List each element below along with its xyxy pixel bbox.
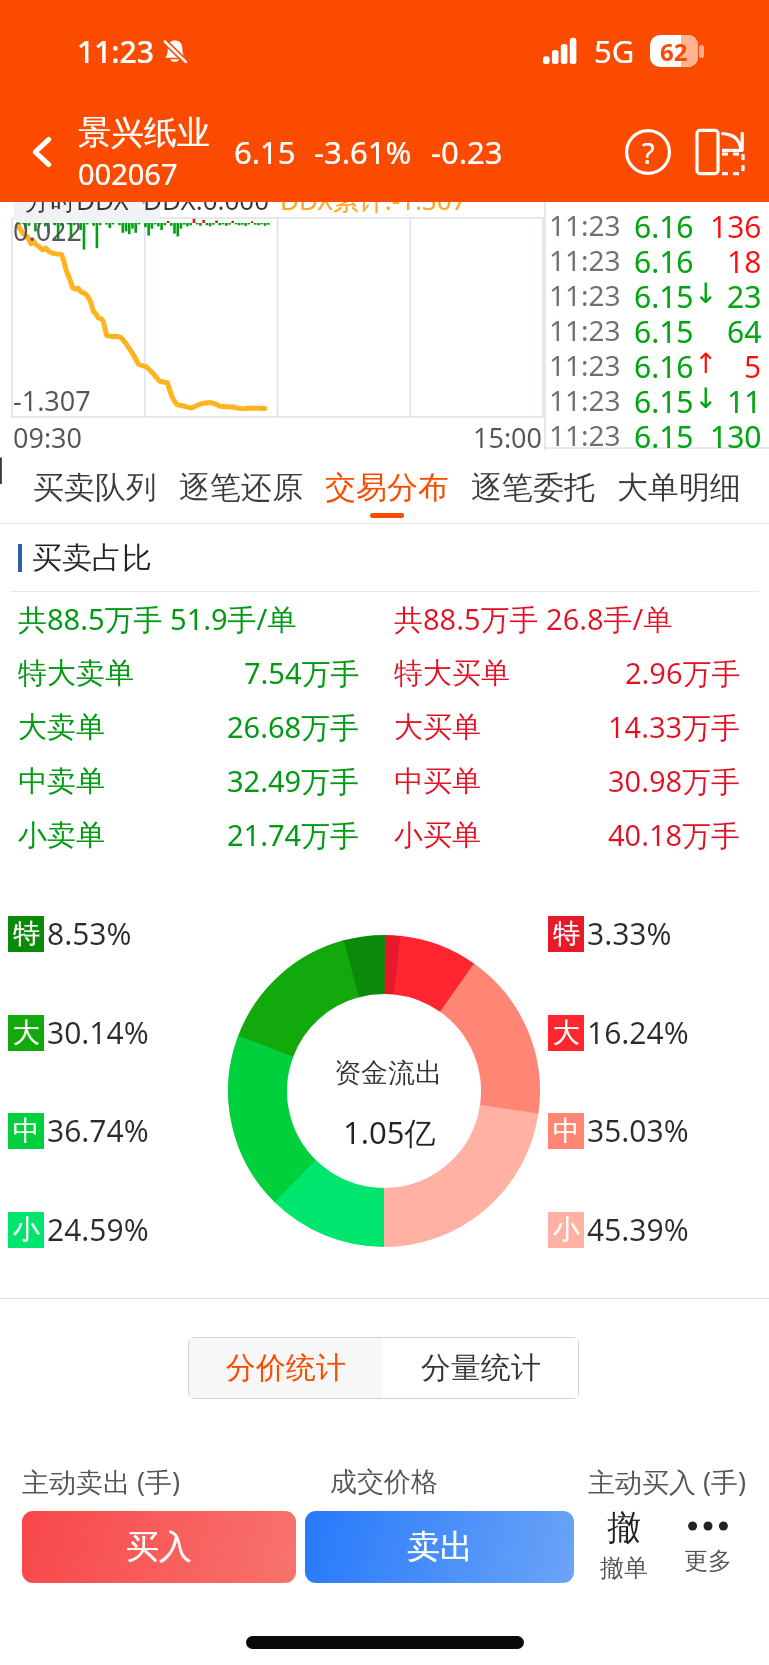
- staticText: 11:23: [549, 241, 621, 276]
- staticText: 大买单: [394, 709, 481, 746]
- staticText: 11:23: [549, 276, 621, 311]
- staticText: 特大买单: [394, 655, 510, 692]
- staticText: 资金流出: [334, 1056, 442, 1090]
- staticText: 6.15: [634, 311, 694, 346]
- button[interactable]: 买卖队列: [33, 450, 157, 524]
- staticText: DDX累计:-1.307: [280, 182, 467, 218]
- staticText: 买入: [126, 1526, 192, 1568]
- staticText: 小卖单: [18, 817, 105, 854]
- staticText: 14.33万手: [608, 707, 741, 747]
- staticText: 3.33%: [587, 913, 672, 954]
- staticText: 30.14%: [47, 1012, 149, 1053]
- staticText: 中卖单: [18, 763, 105, 800]
- staticText: 11: [727, 381, 762, 416]
- button[interactable]: 分价统计: [189, 1338, 383, 1398]
- staticText: 11:23: [549, 311, 621, 346]
- staticText: 30.98万手: [608, 761, 741, 801]
- staticText: 共88.5万手 26.8手/单: [394, 599, 673, 639]
- staticText: 1.05亿: [343, 1111, 436, 1153]
- staticText: 26.68万手: [227, 707, 360, 747]
- staticText: 09:30: [13, 419, 83, 456]
- staticText: 主动买入 (手): [588, 1463, 747, 1500]
- staticText: 35.03%: [587, 1110, 689, 1151]
- button[interactable]: 逐笔委托: [471, 450, 595, 524]
- staticText: 16.24%: [587, 1012, 689, 1053]
- staticText: 大: [553, 1016, 580, 1050]
- staticText: 小: [13, 1213, 40, 1247]
- staticText: 景兴纸业: [78, 112, 210, 154]
- staticText: -0.23: [431, 131, 503, 173]
- staticText: 11:23: [549, 346, 621, 381]
- staticText: 5: [744, 346, 762, 381]
- button[interactable]: 11:23: [544, 311, 769, 346]
- staticText: 11:23: [549, 416, 621, 451]
- button[interactable]: 卖出: [305, 1511, 574, 1583]
- staticText: 6.16: [634, 206, 694, 241]
- staticText: 分量统计: [421, 1349, 541, 1387]
- staticText: 逐笔还原: [179, 468, 303, 507]
- button[interactable]: 分量统计: [383, 1338, 578, 1398]
- staticText: 6.16: [634, 241, 694, 276]
- staticText: 5G: [594, 30, 635, 72]
- staticText: 6.15: [634, 381, 694, 416]
- button[interactable]: 撤: [592, 1506, 656, 1583]
- button[interactable]: 大单明细: [617, 450, 741, 524]
- button[interactable]: 交易分布: [325, 450, 449, 524]
- staticText: 成交明细列: [0, 450, 5, 524]
- staticText: 大单明细: [617, 468, 741, 507]
- staticText: 小: [553, 1213, 580, 1247]
- staticText: 6.15: [634, 276, 694, 311]
- button[interactable]: 11:23: [544, 416, 769, 451]
- staticText: 18: [727, 241, 762, 276]
- staticText: 8.53%: [47, 913, 132, 954]
- staticText: 6.16: [634, 346, 694, 381]
- staticText: 11:23: [549, 206, 621, 241]
- staticText: 分价统计: [226, 1349, 346, 1387]
- staticText: 7.54万手: [244, 653, 360, 693]
- staticText: 6.15: [234, 131, 296, 173]
- staticText: 共88.5万手 51.9手/单: [18, 599, 297, 639]
- button[interactable]: Back: [14, 124, 70, 180]
- staticText: 24.59%: [47, 1209, 149, 1250]
- staticText: 大卖单: [18, 709, 105, 746]
- button[interactable]: 11:23: [544, 276, 769, 311]
- button[interactable]: 成交明细列: [0, 450, 5, 524]
- staticText: 分时DDX: [24, 182, 129, 218]
- staticText: 36.74%: [47, 1110, 149, 1151]
- button[interactable]: Help: [619, 123, 677, 181]
- staticText: ?: [642, 133, 655, 172]
- button[interactable]: 分时DDX: [14, 180, 160, 223]
- button[interactable]: Change layout: [691, 122, 751, 182]
- staticText: 特大卖单: [18, 655, 134, 692]
- staticText: 002067: [78, 154, 178, 193]
- staticText: 中: [13, 1114, 40, 1148]
- staticText: ↓: [694, 277, 718, 310]
- staticText: 32.49万手: [227, 761, 360, 801]
- button[interactable]: 买入: [22, 1511, 296, 1583]
- button[interactable]: 逐笔还原: [179, 450, 303, 524]
- staticText: 撤: [607, 1506, 641, 1549]
- staticText: 21.74万手: [227, 815, 360, 855]
- staticText: 23: [727, 276, 762, 311]
- staticText: 特: [553, 917, 580, 951]
- button[interactable]: 11:23: [544, 381, 769, 416]
- staticText: 11:23: [77, 31, 154, 72]
- staticText: 136: [710, 206, 762, 241]
- button[interactable]: 11:23: [544, 346, 769, 381]
- button[interactable]: 11:23: [544, 241, 769, 276]
- staticText: 逐笔委托: [471, 468, 595, 507]
- button[interactable]: 更多: [676, 1506, 740, 1576]
- staticText: 成交价格: [330, 1465, 438, 1499]
- staticText: 15:00: [473, 419, 543, 456]
- staticText: 2.96万手: [625, 653, 741, 693]
- staticText: 交易分布: [325, 468, 449, 507]
- staticText: -3.61%: [314, 131, 412, 173]
- staticText: ↑: [694, 347, 718, 380]
- staticText: 40.18万手: [608, 815, 741, 855]
- staticText: 更多: [684, 1546, 732, 1576]
- staticText: ↓: [694, 382, 718, 415]
- staticText: 小买单: [394, 817, 481, 854]
- staticText: 买卖占比: [32, 539, 152, 577]
- staticText: 大: [13, 1016, 40, 1050]
- button[interactable]: 11:23: [544, 206, 769, 241]
